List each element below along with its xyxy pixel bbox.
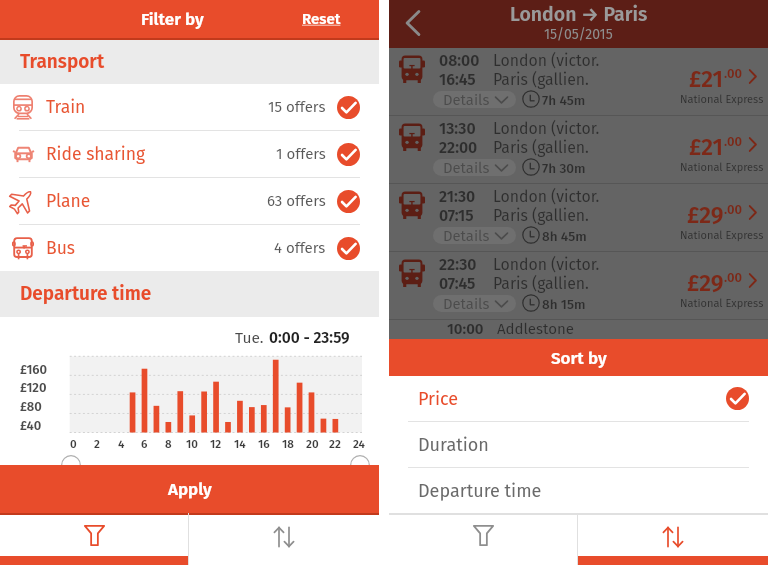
staticText: Plane: [46, 191, 91, 212]
staticText: Sort by: [551, 348, 607, 368]
button[interactable]: Apply: [0, 465, 379, 513]
staticText: 21:30: [439, 187, 476, 206]
staticText: Reset: [302, 10, 341, 28]
staticText: 15 offers: [268, 98, 326, 116]
staticText: 15/05/2015: [544, 26, 613, 43]
staticText: 22:00: [439, 138, 478, 157]
staticText: Details: [443, 227, 490, 244]
button[interactable]: 22:30: [389, 252, 768, 320]
staticText: 22:30: [439, 255, 477, 274]
staticText: Tue.: [235, 329, 264, 348]
staticText: London (victor.: [493, 255, 600, 274]
staticText: .00: [724, 66, 743, 82]
staticText: .00: [724, 270, 743, 286]
staticText: 14: [234, 437, 246, 451]
staticText: 8: [165, 437, 172, 451]
staticText: £80: [20, 399, 42, 415]
button[interactable]: Details: [433, 159, 516, 176]
staticText: Addlestone: [497, 320, 574, 338]
staticText: 08:00: [439, 51, 480, 70]
staticText: Departure time: [20, 282, 152, 305]
staticText: 16: [258, 437, 270, 451]
staticText: London → Paris: [510, 3, 648, 26]
staticText: 07:15: [439, 206, 474, 225]
staticText: Filter by: [141, 9, 204, 29]
staticText: 4 offers: [274, 239, 326, 257]
button[interactable]: Details: [433, 91, 516, 108]
staticText: Apply: [168, 479, 212, 499]
staticText: 12: [210, 437, 222, 451]
staticText: 07:45: [439, 274, 476, 293]
button[interactable]: Sort: [189, 513, 379, 565]
staticText: 63 offers: [267, 192, 326, 210]
button[interactable]: Filter: [389, 513, 577, 565]
button[interactable]: 21:30: [389, 184, 768, 252]
button[interactable]: Reset: [286, 2, 356, 36]
staticText: 22: [329, 437, 341, 451]
staticText: 0: [70, 437, 77, 451]
staticText: London (victor.: [493, 187, 600, 206]
staticText: 8h 45m: [542, 228, 587, 244]
staticText: National Express: [680, 161, 764, 174]
button[interactable]: 08:00: [389, 48, 768, 116]
staticText: £21: [689, 133, 724, 161]
staticText: National Express: [680, 93, 764, 106]
staticText: 6: [141, 437, 148, 451]
staticText: National Express: [680, 229, 764, 242]
button[interactable]: Price: [389, 376, 768, 421]
staticText: Bus: [46, 238, 75, 259]
button[interactable]: Departure time: [389, 468, 768, 513]
staticText: Paris (gallien.: [493, 274, 589, 293]
staticText: Paris (gallien.: [493, 138, 589, 157]
staticText: Train: [46, 97, 86, 118]
staticText: Departure time: [418, 480, 542, 502]
button[interactable]: Train: [0, 84, 379, 130]
button[interactable]: Details: [433, 295, 516, 312]
button[interactable]: Bus: [0, 225, 379, 271]
button[interactable]: Duration: [389, 422, 768, 467]
button[interactable]: Ride sharing: [0, 131, 379, 177]
staticText: 4: [118, 437, 125, 451]
staticText: Duration: [418, 434, 489, 456]
staticText: Transport: [20, 50, 105, 73]
staticText: 0:00 - 23:59: [269, 329, 350, 348]
button[interactable]: Back: [391, 1, 435, 45]
staticText: Price: [418, 388, 459, 410]
staticText: 10:00: [447, 320, 484, 338]
staticText: 13:30: [439, 119, 476, 138]
staticText: Paris (gallien.: [493, 70, 589, 89]
staticText: Details: [443, 159, 490, 176]
staticText: £160: [20, 362, 48, 378]
staticText: £120: [20, 380, 47, 396]
staticText: Ride sharing: [46, 144, 146, 165]
staticText: Details: [443, 295, 490, 312]
staticText: 1 offers: [276, 145, 326, 163]
staticText: 24: [353, 437, 365, 451]
staticText: 7h 45m: [542, 92, 586, 108]
staticText: 7h 30m: [542, 160, 586, 176]
staticText: .00: [724, 202, 743, 218]
staticText: 2: [94, 437, 100, 451]
staticText: £21: [689, 65, 724, 93]
staticText: £29: [687, 269, 724, 297]
staticText: 10: [186, 437, 198, 451]
staticText: 16:45: [439, 70, 476, 89]
staticText: 18: [282, 437, 294, 451]
button[interactable]: Sort by: [389, 339, 768, 376]
staticText: 20: [306, 437, 319, 451]
button[interactable]: 13:30: [389, 116, 768, 184]
staticText: London (victor.: [493, 119, 600, 138]
staticText: 8h 15m: [542, 296, 586, 312]
staticText: £40: [20, 418, 42, 434]
staticText: £29: [687, 201, 724, 229]
staticText: Paris (gallien.: [493, 206, 589, 225]
staticText: .00: [724, 134, 743, 150]
button[interactable]: Filter: [0, 513, 188, 565]
staticText: London (victor.: [493, 51, 600, 70]
staticText: National Express: [680, 297, 764, 310]
button[interactable]: Sort: [578, 513, 768, 565]
button[interactable]: Details: [433, 227, 516, 244]
button[interactable]: Plane: [0, 178, 379, 224]
staticText: Details: [443, 91, 490, 108]
